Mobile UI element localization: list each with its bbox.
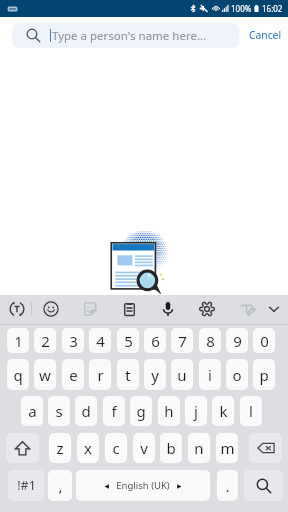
button[interactable]: b [160,433,182,463]
button[interactable]: y [144,359,166,390]
button[interactable]: 4 [89,328,111,353]
staticText: w [39,365,51,385]
button[interactable]: p [253,359,275,390]
button[interactable]: Emoji [37,295,65,323]
staticText: u [177,365,187,385]
button[interactable]: t [117,359,139,390]
button[interactable]: 7 [171,328,193,353]
staticText: x [84,438,92,458]
staticText: 9 [233,331,242,351]
button[interactable]: ◂ English (UK) ▸ [76,470,210,501]
staticText: e [69,365,78,385]
button[interactable]: Voice input [154,295,182,323]
staticText: i [208,365,212,385]
staticText: l [249,401,253,421]
staticText: 100% [231,3,252,14]
button[interactable]: f [103,396,125,426]
button[interactable]: More options [260,295,288,323]
button[interactable]: Backspace [249,433,282,463]
staticText: 2 [41,331,50,351]
button[interactable]: d [75,396,97,426]
staticText: d [81,401,91,421]
staticText: b [166,438,176,458]
button[interactable]: 5 [117,328,139,353]
button[interactable]: g [130,396,152,426]
button[interactable]: j [185,396,207,426]
staticText: ◂ English (UK) ▸ [104,479,182,492]
button[interactable]: 6 [144,328,166,353]
staticText: j [194,401,198,421]
staticText: h [164,401,174,421]
button[interactable]: Settings [193,295,221,323]
button[interactable]: m [216,433,238,463]
button[interactable]: o [226,359,248,390]
button[interactable]: q [7,359,29,390]
staticText: r [97,365,104,385]
staticText: s [55,401,63,421]
staticText: a [28,401,37,421]
button[interactable]: 2 [34,328,56,353]
staticText: 0 [260,331,269,351]
staticText: 7 [178,331,187,351]
button[interactable]: x [77,433,99,463]
button[interactable]: 8 [199,328,221,353]
staticText: n [194,438,204,458]
button[interactable]: h [158,396,180,426]
button[interactable]: r [89,359,111,390]
staticText: 5 [124,331,133,351]
staticText: t [125,365,131,385]
button[interactable]: 0 [253,328,275,353]
button[interactable]: k [212,396,234,426]
button[interactable]: . [217,470,238,501]
button[interactable]: Shift [6,433,39,463]
button[interactable]: 3 [62,328,84,353]
button[interactable]: Search [244,470,283,501]
staticText: !#1 [17,477,36,494]
staticText: , [58,476,63,496]
button[interactable]: 9 [226,328,248,353]
button[interactable]: Handwriting [233,295,261,323]
button[interactable]: i [199,359,221,390]
button[interactable]: Clipboard [115,295,143,323]
staticText: 8 [206,331,215,351]
staticText: y [151,365,159,385]
staticText: 3 [69,331,78,351]
button[interactable]: 1 [7,328,29,353]
button[interactable]: Translate [3,295,31,323]
button[interactable]: Cancel [246,21,284,49]
button[interactable]: s [48,396,70,426]
button[interactable]: w [34,359,56,390]
staticText: p [259,365,269,385]
button[interactable]: l [240,396,262,426]
button[interactable]: Stickers [76,295,104,323]
staticText: 6 [151,331,160,351]
button[interactable]: !#1 [8,470,44,501]
staticText: q [13,365,23,385]
staticText: 4 [96,331,105,351]
button[interactable]: e [62,359,84,390]
button[interactable]: n [188,433,210,463]
staticText: c [112,438,120,458]
staticText: 16:02 [262,3,283,14]
button[interactable]: z [49,433,71,463]
staticText: 1 [14,331,23,351]
staticText: f [111,401,117,421]
button[interactable]: a [21,396,43,426]
staticText: . [225,476,230,496]
button[interactable]: v [133,433,155,463]
staticText: z [56,438,64,458]
button[interactable]: u [171,359,193,390]
staticText: Type a person's name here… [52,28,207,44]
staticText: k [219,401,228,421]
staticText: m [220,438,235,458]
staticText: g [136,401,146,421]
button[interactable]: c [105,433,127,463]
button[interactable]: , [48,470,72,501]
staticText: v [140,438,148,458]
staticText: o [232,365,242,385]
button[interactable]: Type a person's name here… [12,23,239,48]
staticText: Cancel [249,28,282,42]
